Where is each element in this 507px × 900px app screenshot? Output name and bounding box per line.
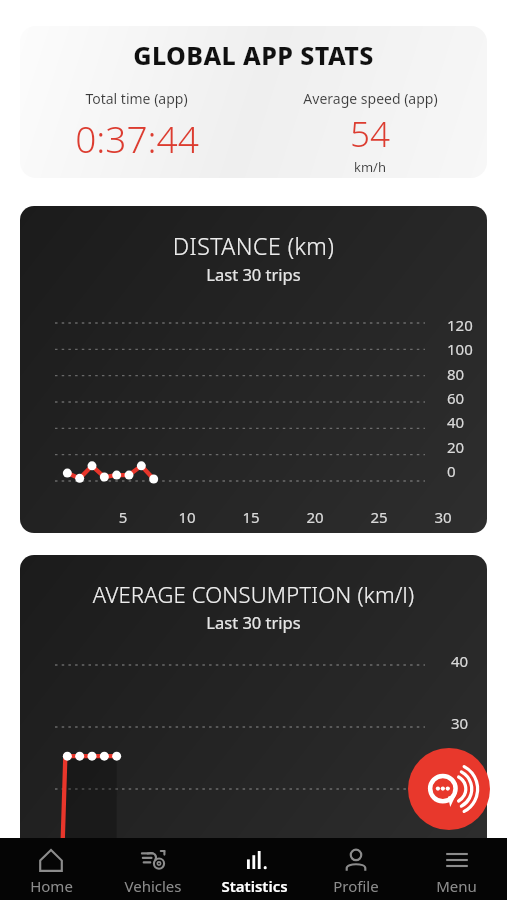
staticText: 100 [447,339,481,359]
staticText: Vehicles [124,876,182,896]
staticText: DISTANCE (km) [20,230,487,261]
button[interactable]: Voice assistant [408,748,490,830]
staticText: 30 [411,507,475,527]
staticText: 120 [447,315,481,335]
staticText: AVERAGE CONSUMPTION (km/l) [20,579,487,609]
button[interactable]: AVERAGE CONSUMPTION (km/l) [20,555,487,855]
staticText: Profile [333,876,379,896]
button[interactable]: Profile [305,838,406,900]
button[interactable]: GLOBAL APP STATS [20,26,487,178]
staticText: 15 [219,507,283,527]
staticText: Home [30,876,73,896]
staticText: GLOBAL APP STATS [20,38,487,72]
staticText: 54 [350,110,390,158]
staticText: 25 [347,507,411,527]
staticText: 40 [447,412,481,432]
button[interactable]: Vehicles [102,838,204,900]
staticText: 20 [283,507,347,527]
staticText: Total time (app) [85,89,188,108]
staticText: km/h [354,158,386,176]
staticText: 10 [155,507,219,527]
staticText: 80 [447,364,481,384]
staticText: Menu [436,876,477,896]
staticText: 0:37:44 [75,113,199,163]
staticText: 0 [447,461,481,481]
staticText: 5 [91,507,155,527]
staticText: Average speed (app) [303,89,438,108]
staticText: 60 [447,388,481,408]
staticText: Statistics [221,876,288,896]
staticText: 40 [451,651,481,671]
button[interactable]: Statistics [204,838,305,900]
staticText: 20 [447,437,481,457]
staticText: Last 30 trips [20,611,487,633]
button[interactable]: DISTANCE (km) [20,206,487,533]
staticText: Last 30 trips [20,263,487,285]
staticText: 30 [451,713,481,733]
button[interactable]: Home [0,838,102,900]
button[interactable]: Menu [406,838,507,900]
